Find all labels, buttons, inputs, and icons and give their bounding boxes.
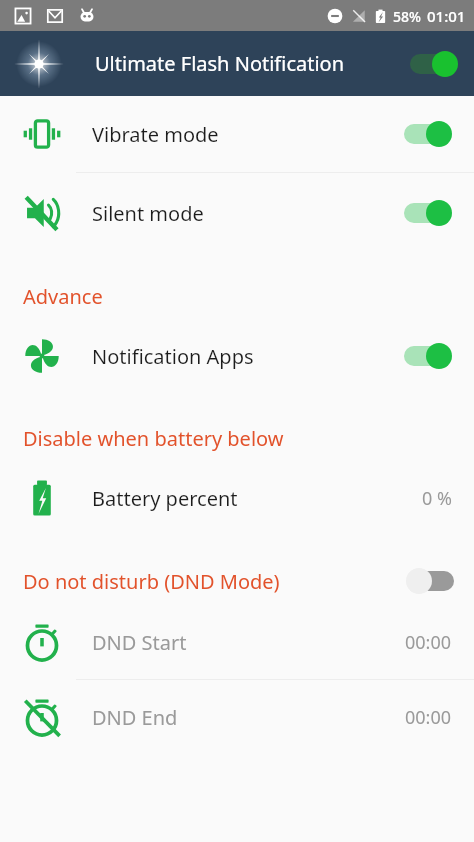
staticText: 00:00 [405, 630, 452, 655]
staticText: Disable when battery below [23, 425, 284, 452]
button[interactable]: Silent mode [0, 173, 474, 253]
staticText: Silent mode [92, 200, 204, 227]
button[interactable]: Do not disturb toggle [400, 559, 462, 603]
staticText: Notification Apps [92, 343, 254, 370]
staticText: Battery percent [92, 485, 238, 512]
staticText: Ultimate Flash Notification [95, 50, 345, 77]
button[interactable]: Vibrate mode [0, 96, 474, 172]
staticText: 00:00 [405, 705, 452, 730]
staticText: 01:01 [427, 6, 466, 26]
button[interactable]: Notification Apps [0, 317, 474, 395]
staticText: Advance [23, 283, 103, 310]
button[interactable]: Master flash toggle [402, 42, 464, 86]
button[interactable]: DND End [0, 680, 474, 754]
staticText: Do not disturb (DND Mode) [23, 568, 280, 595]
button[interactable]: DND Start [0, 605, 474, 679]
staticText: 58% [393, 7, 421, 26]
button[interactable]: Flash logo [12, 37, 66, 91]
button[interactable]: Battery percent [0, 459, 474, 537]
staticText: DND End [92, 704, 178, 731]
staticText: Vibrate mode [92, 121, 219, 148]
staticText: 0 % [422, 486, 452, 511]
staticText: DND Start [92, 629, 187, 656]
